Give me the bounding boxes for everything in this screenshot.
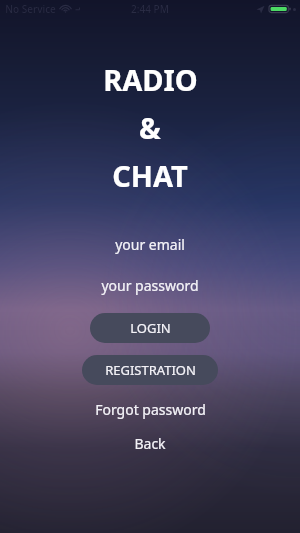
staticText: CHAT [112,156,188,195]
staticText: LOGIN [130,319,171,337]
button[interactable]: Forgot password [0,399,300,419]
button[interactable]: your email [0,234,300,254]
staticText: RADIO [103,60,198,99]
button[interactable]: your password [0,275,300,295]
button[interactable]: REGISTRATION [82,355,218,385]
button[interactable]: LOGIN [90,313,210,343]
staticText: Forgot password [95,400,206,419]
staticText: No Service [5,2,56,16]
staticText: Back [134,434,166,453]
staticText: REGISTRATION [105,361,196,379]
staticText: your email [115,235,185,254]
staticText: & [139,108,161,147]
staticText: your password [101,276,199,295]
staticText: 2:44 PM [131,2,169,16]
button[interactable]: Back [0,433,300,453]
